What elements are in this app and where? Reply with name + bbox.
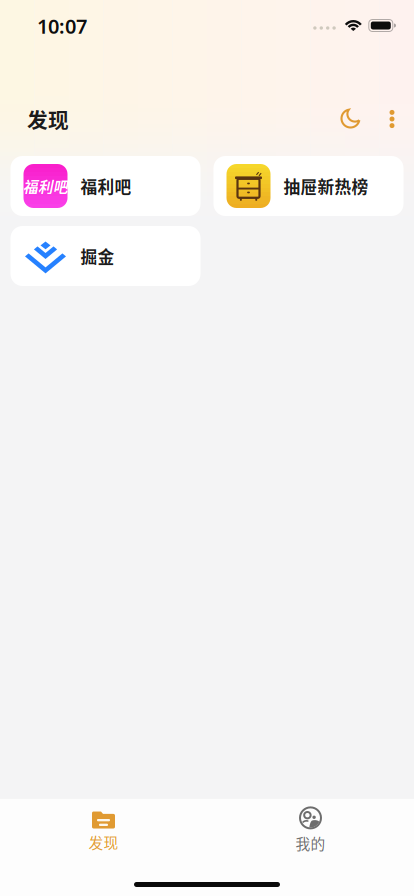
button[interactable]: 抽屉新热榜 <box>213 156 403 216</box>
button[interactable]: 我的 <box>207 798 414 853</box>
button[interactable]: 发现 <box>0 798 207 853</box>
staticText: 福利吧 <box>23 175 68 197</box>
button[interactable]: 掘金 <box>10 226 200 286</box>
staticText: 我的 <box>295 832 325 854</box>
button[interactable]: 夜间模式 <box>324 97 378 141</box>
button[interactable]: 福利吧 <box>10 156 200 216</box>
staticText: 发现 <box>27 104 69 134</box>
staticText: 掘金 <box>80 244 114 268</box>
staticText: 抽屉新热榜 <box>283 174 368 198</box>
button[interactable]: 更多 <box>378 97 406 141</box>
staticText: 福利吧 <box>80 174 131 198</box>
staticText: 10:07 <box>37 13 87 39</box>
staticText: 发现 <box>88 831 118 853</box>
